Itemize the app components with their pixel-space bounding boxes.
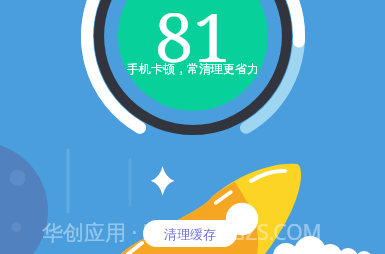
- staticText: 清理缓存: [164, 226, 216, 242]
- button[interactable]: 清理缓存: [143, 220, 237, 247]
- staticText: 81: [143, 0, 243, 69]
- staticText: 华创应用 · HUAJIANGZS.COM: [42, 218, 322, 247]
- staticText: 手机卡顿，常清理更省力: [123, 61, 263, 81]
